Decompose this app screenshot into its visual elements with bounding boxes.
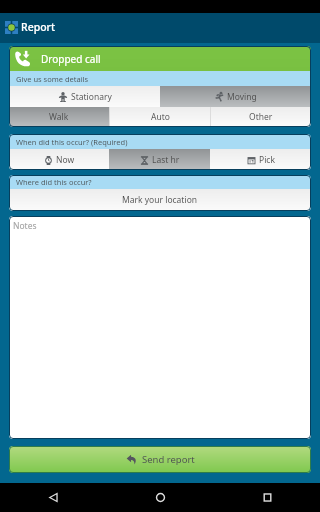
staticText: Pick: [259, 154, 275, 166]
staticText: Where did this occur?: [16, 177, 92, 187]
button[interactable]: Last hr: [109, 149, 210, 170]
button[interactable]: Now: [9, 149, 109, 170]
staticText: Dropped call: [41, 52, 101, 66]
button[interactable]: Recent apps: [251, 483, 283, 512]
staticText: Now: [56, 154, 75, 166]
button[interactable]: Home: [144, 483, 176, 512]
button[interactable]: Back: [37, 483, 69, 512]
staticText: Moving: [227, 91, 257, 103]
staticText: When did this occur? (Required): [16, 137, 128, 147]
button[interactable]: Dropped call: [9, 46, 311, 71]
button[interactable]: Walk: [9, 107, 109, 127]
staticText: Stationary: [71, 91, 112, 103]
button[interactable]: Notes: [9, 216, 311, 439]
button[interactable]: Moving: [160, 86, 311, 107]
staticText: Give us some details: [16, 74, 89, 84]
button[interactable]: Auto: [110, 107, 210, 127]
button[interactable]: Other: [211, 107, 311, 127]
staticText: Last hr: [152, 154, 180, 166]
staticText: Report: [21, 20, 56, 34]
staticText: Send report: [142, 453, 195, 466]
staticText: Notes: [13, 220, 37, 232]
staticText: Walk: [49, 111, 69, 123]
button[interactable]: Send report: [9, 446, 311, 473]
button[interactable]: Pick: [210, 149, 311, 170]
staticText: Auto: [151, 111, 170, 123]
staticText: Other: [249, 111, 273, 123]
button[interactable]: Mark your location: [9, 189, 311, 211]
staticText: Mark your location: [122, 194, 198, 206]
button[interactable]: Stationary: [9, 86, 160, 107]
